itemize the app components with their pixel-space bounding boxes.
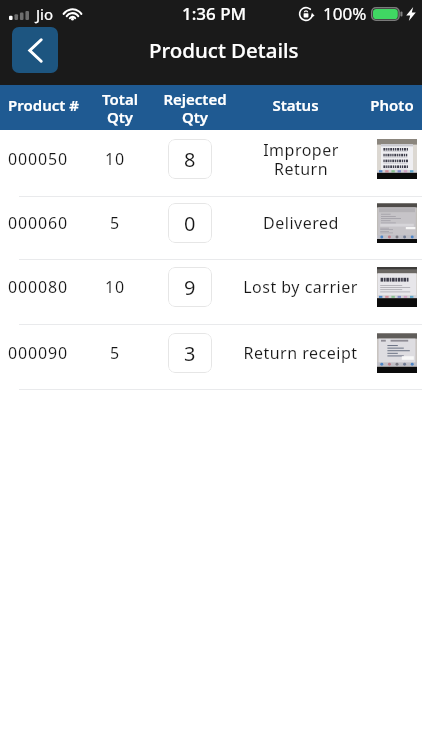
staticText: Jio [36, 4, 54, 24]
staticText: Return receipt [243, 342, 358, 364]
button[interactable]: 9 [168, 267, 212, 307]
staticText: 000090 [8, 342, 69, 364]
staticText: 9 [184, 274, 196, 301]
staticText: Product # [8, 95, 79, 115]
staticText: 000080 [8, 276, 69, 298]
button[interactable]: 3 [168, 333, 212, 373]
staticText: 100% [323, 2, 367, 25]
staticText: Product Details [149, 36, 299, 64]
staticText: Status [272, 95, 319, 115]
staticText: 3 [184, 340, 196, 367]
staticText: 10 [105, 148, 126, 170]
button[interactable]: Photo [377, 333, 417, 373]
staticText: 000060 [8, 212, 69, 234]
staticText: Rejected Qty [163, 89, 227, 127]
staticText: 10 [105, 276, 126, 298]
staticText: Total Qty [102, 89, 138, 127]
button[interactable]: Photo [377, 139, 417, 179]
staticText: 0 [184, 210, 196, 237]
button[interactable]: Back [12, 27, 58, 73]
staticText: 5 [110, 342, 121, 364]
button[interactable]: Photo [377, 203, 417, 243]
staticText: 5 [110, 212, 121, 234]
staticText: 8 [184, 146, 196, 173]
button[interactable]: 0 [168, 203, 212, 243]
staticText: Lost by carrier [243, 276, 358, 298]
staticText: Delivered [263, 212, 339, 234]
staticText: Photo [370, 95, 414, 115]
staticText: 1:36 PM [182, 2, 247, 25]
button[interactable]: 8 [168, 139, 212, 179]
staticText: 000050 [8, 148, 69, 170]
staticText: Improper Return [263, 139, 339, 180]
button[interactable]: Photo [377, 267, 417, 307]
